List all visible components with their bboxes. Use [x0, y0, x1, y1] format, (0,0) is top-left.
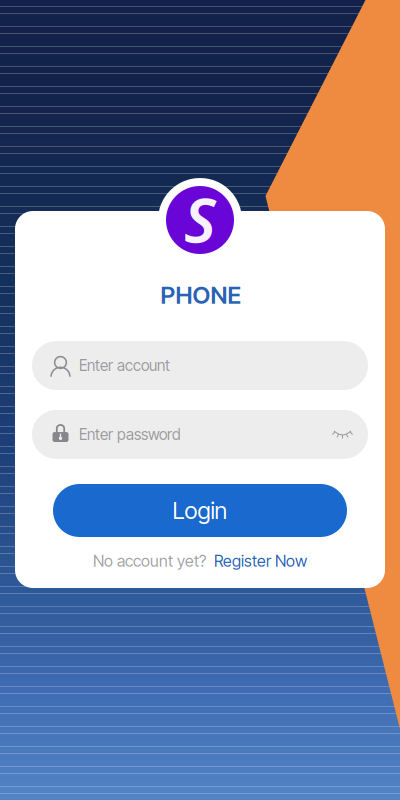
button[interactable]: Login — [53, 484, 347, 537]
staticText: Enter password — [79, 425, 181, 444]
staticText: Login — [172, 496, 227, 525]
staticText: S — [184, 178, 216, 260]
staticText: Enter account — [79, 356, 170, 375]
staticText: Register Now — [214, 551, 307, 571]
staticText: PHONE — [160, 280, 241, 309]
button[interactable]: Register Now — [214, 551, 307, 571]
button[interactable]: Show password — [328, 422, 357, 447]
staticText: No account yet? — [93, 551, 206, 571]
